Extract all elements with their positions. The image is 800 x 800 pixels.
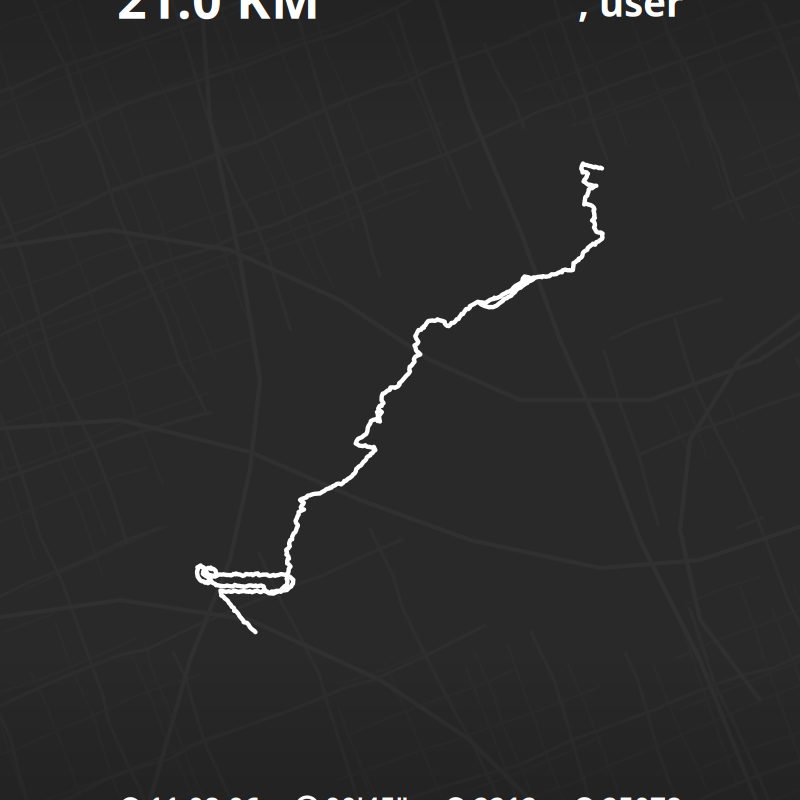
staticText: 11:08:06 — [148, 789, 260, 800]
button[interactable]: 21.0 KM — [117, 0, 320, 33]
staticText: 00'45" — [325, 789, 409, 800]
staticText: 25078 — [602, 789, 682, 800]
staticText: 2212 — [473, 789, 537, 800]
staticText: 21.0 KM — [117, 0, 320, 33]
staticText: , user — [578, 0, 683, 27]
button[interactable]: , user — [578, 0, 683, 27]
